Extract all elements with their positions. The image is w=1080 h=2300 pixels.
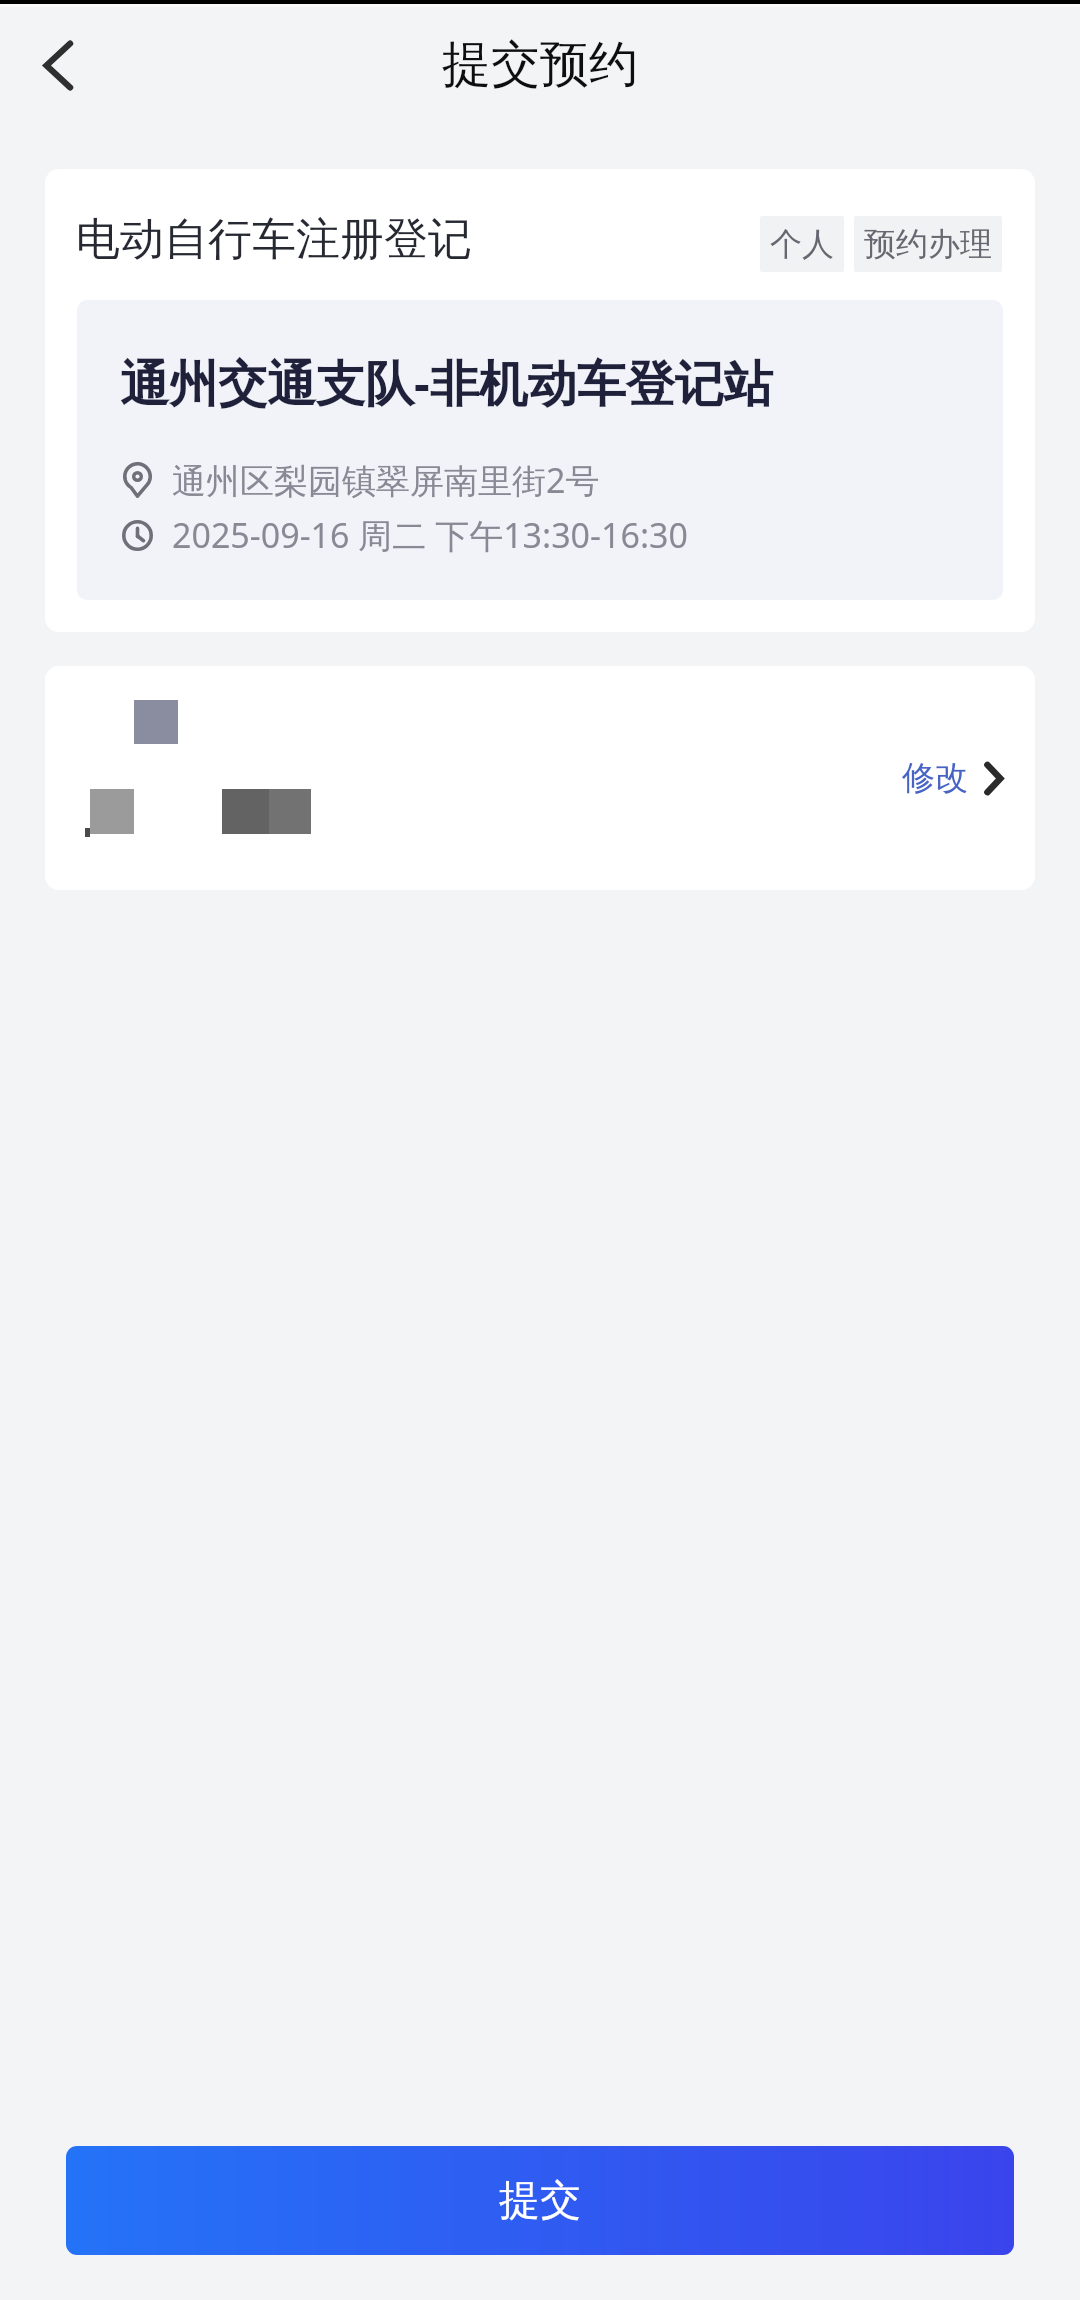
staticText: 预约办理 <box>864 224 992 264</box>
staticText: 电动自行车注册登记 <box>76 212 472 267</box>
button[interactable]: 修改 <box>902 757 1003 799</box>
button[interactable]: 通州交通支队-非机动车登记站 <box>77 300 1003 600</box>
staticText: 提交 <box>499 2175 581 2227</box>
staticText: 个人 <box>770 224 834 264</box>
button[interactable]: 修改 <box>45 666 1035 890</box>
button[interactable]: Back <box>20 27 96 103</box>
button[interactable]: 提交 <box>66 2146 1014 2255</box>
staticText: 通州区梨园镇翠屏南里街2号 <box>172 457 600 503</box>
button[interactable]: 预约办理 <box>854 216 1002 272</box>
button[interactable]: 个人 <box>760 216 844 272</box>
staticText: 通州交通支队-非机动车登记站 <box>120 349 773 416</box>
staticText: 提交预约 <box>442 34 638 96</box>
staticText: 2025-09-16 周二 下午13:30-16:30 <box>172 512 688 558</box>
staticText: 修改 <box>902 757 968 799</box>
